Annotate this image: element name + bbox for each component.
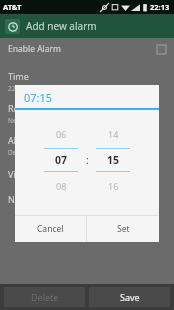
staticText: Time <box>8 70 29 82</box>
button[interactable]: Save <box>89 287 170 307</box>
staticText: Delete <box>31 291 59 303</box>
button[interactable]: 07 <box>44 149 78 171</box>
staticText: 06 <box>56 128 67 140</box>
staticText: 08 <box>56 180 67 192</box>
staticText: 07 <box>55 153 68 167</box>
staticText: Save <box>120 291 140 303</box>
staticText: Enable Alarm <box>8 43 62 55</box>
staticText: Alarm sound <box>8 134 63 146</box>
staticText: Cancel <box>37 223 64 235</box>
staticText: Add new alarm <box>26 19 97 33</box>
button[interactable]: Enable Alarm <box>0 38 174 60</box>
button[interactable]: Repeat <box>0 102 174 125</box>
staticText: Repeat <box>8 102 38 114</box>
staticText: Never <box>8 116 27 125</box>
staticText: : <box>86 153 89 167</box>
staticText: 16 <box>108 180 119 192</box>
button[interactable]: 15 <box>96 149 130 171</box>
staticText: Default <box>8 148 31 157</box>
button[interactable]: Name <box>0 193 174 205</box>
button[interactable]: 14 <box>96 124 130 144</box>
staticText: Vibrate <box>8 168 39 180</box>
button[interactable]: Alarm sound <box>0 134 174 157</box>
staticText: Set <box>117 223 130 235</box>
button[interactable]: 16 <box>96 176 130 196</box>
staticText: 22:13 <box>150 2 170 12</box>
button[interactable]: Delete <box>4 287 85 307</box>
button[interactable]: 06 <box>44 124 78 144</box>
staticText: 15 <box>107 153 120 167</box>
staticText: Name <box>8 193 34 205</box>
button[interactable]: Vibrate <box>0 168 174 180</box>
button[interactable]: Cancel <box>15 216 86 242</box>
staticText: 22:... <box>8 84 23 93</box>
button[interactable]: 08 <box>44 176 78 196</box>
staticText: 14 <box>108 128 119 140</box>
button[interactable]: Alarm clock <box>5 19 20 34</box>
staticText: AT&T <box>3 2 22 12</box>
button[interactable]: Set <box>87 216 159 242</box>
button[interactable]: Time <box>0 70 174 93</box>
staticText: 07:15 <box>24 90 53 105</box>
